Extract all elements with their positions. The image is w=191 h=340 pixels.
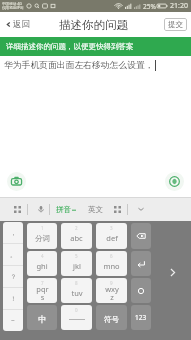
- staticText: 。: [10, 251, 17, 259]
- staticText: 9: [110, 280, 113, 286]
- button[interactable]: 1: [27, 223, 57, 249]
- staticText: 提交: [168, 20, 183, 29]
- staticText: mno: [103, 261, 120, 271]
- button[interactable]: 6: [96, 251, 127, 276]
- staticText: def: [106, 233, 118, 243]
- staticText: abc: [70, 233, 83, 243]
- button[interactable]: enter: [131, 251, 151, 276]
- staticText: 描述你的问题: [59, 18, 128, 32]
- staticText: 123: [135, 313, 147, 322]
- button[interactable]: Voice input: [35, 197, 46, 221]
- button[interactable]: 8: [61, 278, 92, 303]
- staticText: tuv: [71, 288, 83, 298]
- button[interactable]: 拼音: [46, 197, 85, 221]
- staticText: 6: [110, 253, 113, 259]
- button[interactable]: Next: [153, 222, 191, 331]
- button[interactable]: Hide keyboard: [129, 197, 153, 221]
- staticText: ，: [10, 229, 17, 237]
- staticText: ！: [10, 295, 17, 303]
- staticText: 0: [75, 307, 78, 313]
- staticText: ？: [10, 273, 17, 281]
- button[interactable]: 0: [61, 305, 92, 330]
- button[interactable]: Voice input: [165, 172, 184, 191]
- staticText: 3: [110, 225, 113, 231]
- button[interactable]: Settings: [106, 197, 129, 221]
- button[interactable]: 2: [61, 223, 92, 249]
- button[interactable]: ？: [3, 266, 23, 287]
- staticText: 拼音: [56, 205, 71, 214]
- button[interactable]: 英文: [85, 197, 106, 221]
- button[interactable]: 符号: [96, 305, 127, 330]
- staticText: 8: [75, 280, 78, 286]
- button[interactable]: ，: [3, 222, 23, 243]
- button[interactable]: Add photo: [7, 172, 26, 191]
- staticText: 符号: [104, 315, 119, 324]
- button[interactable]: 提交: [164, 18, 187, 31]
- staticText: 华为手机页面出面左右移动怎么设置，: [4, 60, 154, 71]
- staticText: 英文: [88, 205, 103, 214]
- button[interactable]: 3: [96, 223, 127, 249]
- button[interactable]: 中: [27, 305, 57, 330]
- button[interactable]: circle: [131, 278, 151, 303]
- staticText: 仅限紧急呼叫: [2, 6, 24, 11]
- button[interactable]: 返回: [0, 14, 34, 35]
- staticText: 返回: [13, 19, 30, 30]
- staticText: 详细描述你的问题，以便更快得到答案: [6, 42, 134, 51]
- staticText: ~: [11, 316, 15, 325]
- button[interactable]: ~: [3, 310, 23, 331]
- staticText: 中: [38, 314, 47, 325]
- staticText: 2: [75, 225, 78, 231]
- staticText: 1: [41, 225, 44, 231]
- button[interactable]: 7: [27, 278, 57, 303]
- staticText: 7: [41, 280, 44, 286]
- staticText: 中国移动 4G: [2, 1, 22, 6]
- staticText: wxy z: [105, 284, 119, 302]
- staticText: 5: [75, 253, 78, 259]
- staticText: 21:20: [170, 1, 188, 11]
- staticText: 4: [41, 253, 44, 259]
- staticText: ghi: [36, 261, 48, 271]
- button[interactable]: 5: [61, 251, 92, 276]
- button[interactable]: 9: [96, 278, 127, 303]
- staticText: 分词: [35, 234, 50, 243]
- staticText: jkl: [73, 261, 81, 271]
- button[interactable]: Keyboard layouts: [0, 197, 35, 221]
- button[interactable]: 123: [131, 305, 151, 330]
- button[interactable]: ！: [3, 288, 23, 309]
- button[interactable]: bksp: [131, 223, 151, 249]
- button[interactable]: 4: [27, 251, 57, 276]
- staticText: pqr s: [36, 284, 49, 302]
- staticText: 25%: [143, 2, 156, 11]
